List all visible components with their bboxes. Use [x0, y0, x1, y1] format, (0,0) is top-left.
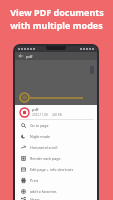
staticText: Render each page — [30, 156, 61, 161]
staticText: Share — [30, 197, 40, 200]
staticText: pdf — [32, 107, 39, 112]
staticText: pdf — [26, 54, 33, 59]
button[interactable]: add to favorites — [15, 186, 97, 197]
button[interactable]: Render each page — [15, 153, 97, 164]
button[interactable]: Night mode — [15, 131, 97, 142]
staticText: Horizontal scroll — [30, 145, 58, 150]
staticText: add to favorites — [30, 189, 57, 194]
staticText: Night mode — [30, 134, 51, 139]
staticText: View PDF documents — [10, 6, 104, 18]
staticText: 2023-11-08 — [32, 113, 48, 117]
button[interactable]: Go to page — [15, 120, 97, 131]
button[interactable]: Share — [15, 197, 97, 200]
staticText: Edit page + info shortcuts — [30, 167, 74, 172]
button[interactable]: Back — [18, 53, 24, 59]
staticText: with multiple modes — [10, 19, 103, 31]
button[interactable]: Print — [15, 175, 97, 186]
staticText: 240 KB — [52, 113, 62, 117]
button[interactable]: pdf — [15, 105, 97, 119]
staticText: Go to page — [30, 123, 49, 128]
button[interactable]: Edit page + info shortcuts — [15, 164, 97, 175]
staticText: Print — [30, 178, 39, 183]
button[interactable]: Horizontal scroll — [15, 142, 97, 153]
